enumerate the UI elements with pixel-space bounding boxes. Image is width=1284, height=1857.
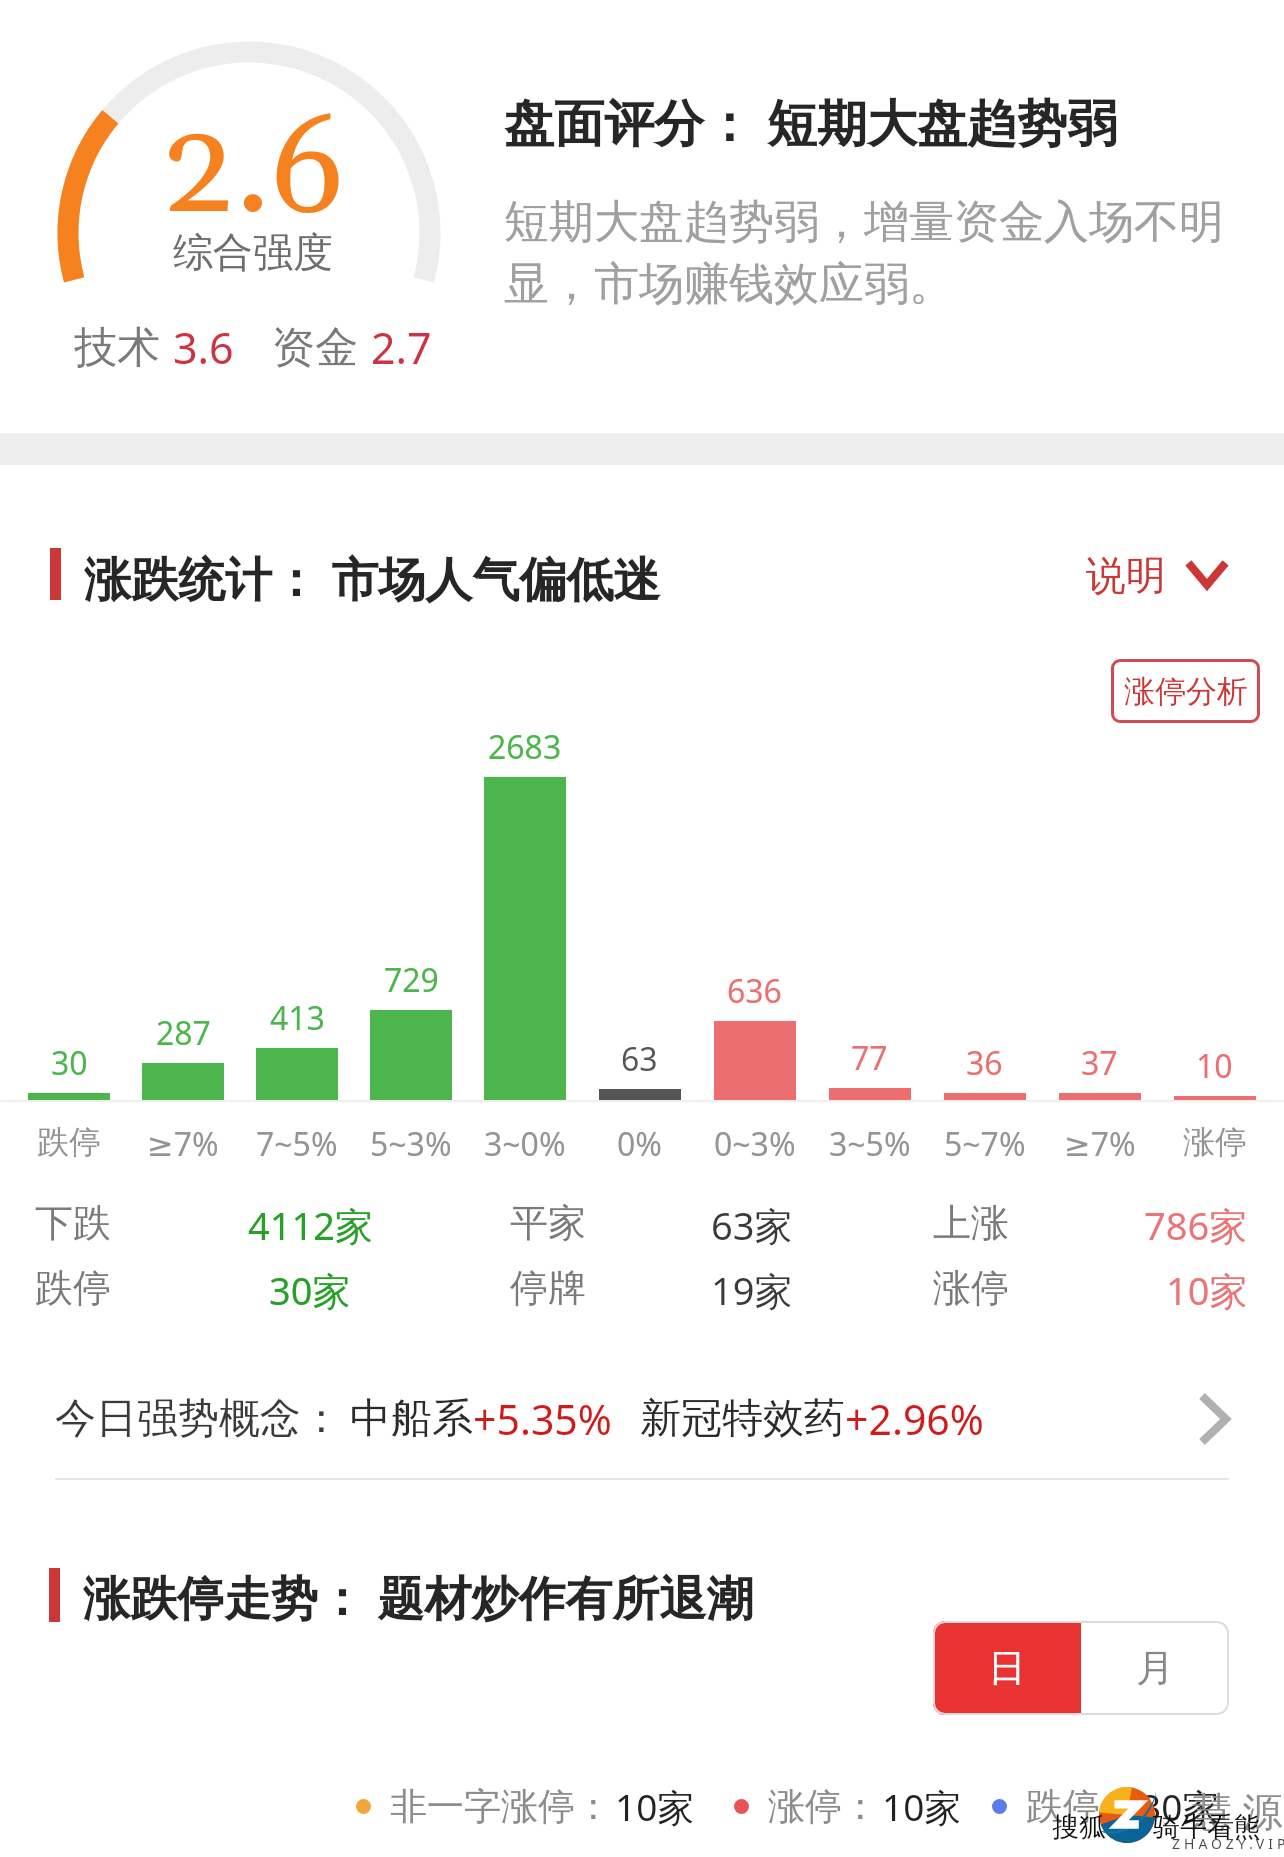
staticText: 涨停分析 xyxy=(1124,672,1248,711)
staticText: 7~5% xyxy=(256,1122,338,1166)
staticText: 4112家 xyxy=(248,1199,373,1247)
staticText: 63家 xyxy=(711,1199,793,1247)
staticText: 0~3% xyxy=(714,1122,796,1166)
staticText: 19家 xyxy=(711,1264,793,1312)
staticText: 涨停 xyxy=(933,1264,1009,1312)
staticText: 729 xyxy=(384,958,439,1002)
staticText: 10家 xyxy=(615,1781,695,1831)
staticText: 慧 源 xyxy=(1192,1783,1283,1838)
staticText: 平家 xyxy=(510,1199,586,1247)
staticText: ZHAOZY.VIP xyxy=(1172,1834,1284,1853)
button[interactable]: 说明 xyxy=(1070,538,1243,612)
staticText: 3~0% xyxy=(484,1122,566,1166)
staticText: 跌停： xyxy=(1026,1783,1137,1830)
staticText: 盘面评分： 短期大盘趋势弱 xyxy=(504,88,1117,156)
staticText: 5~3% xyxy=(370,1122,452,1166)
staticText: 月 xyxy=(1136,1644,1174,1692)
staticText: 786家 xyxy=(1144,1199,1248,1247)
staticText: +2.96% xyxy=(845,1391,984,1447)
staticText: 跌停 xyxy=(37,1122,101,1162)
staticText: +5.35% xyxy=(473,1391,612,1447)
staticText: 技术 xyxy=(74,321,160,375)
staticText: 63 xyxy=(621,1037,658,1081)
other: More concepts xyxy=(1199,1393,1229,1445)
staticText: 涨跌统计： 市场人气偏低迷 xyxy=(84,546,661,610)
staticText: 287 xyxy=(156,1011,211,1055)
staticText: 综合强度 xyxy=(173,227,333,277)
staticText: 下跌 xyxy=(35,1199,111,1247)
button[interactable]: 涨停分析 xyxy=(1111,659,1260,723)
staticText: 5~7% xyxy=(944,1122,1026,1166)
staticText: 说明 xyxy=(1086,550,1166,600)
staticText: 37 xyxy=(1081,1041,1118,1085)
staticText: 日 xyxy=(988,1644,1026,1692)
staticText: 骑牛看熊 xyxy=(1153,1810,1261,1844)
staticText: 2.7 xyxy=(371,318,432,377)
staticText: 30 xyxy=(51,1041,88,1085)
staticText: 非一字涨停： xyxy=(390,1783,612,1830)
staticText: 上涨 xyxy=(933,1199,1009,1247)
staticText: 77 xyxy=(851,1036,888,1080)
staticText: 10 xyxy=(1196,1044,1233,1088)
staticText: 30家 xyxy=(269,1264,351,1312)
staticText: 30家 xyxy=(1140,1781,1220,1831)
staticText: 短期大盘趋势弱，增量资金入场不明显，市场赚钱效应弱。 xyxy=(504,194,1264,313)
staticText: 停牌 xyxy=(510,1264,586,1312)
staticText: 10家 xyxy=(1166,1264,1248,1312)
staticText: 36 xyxy=(966,1041,1003,1085)
staticText: ≥7% xyxy=(147,1122,219,1166)
staticText: 涨停： xyxy=(768,1783,879,1830)
staticText: 636 xyxy=(727,969,782,1013)
staticText: 涨停 xyxy=(1183,1122,1247,1162)
staticText: 413 xyxy=(270,996,325,1040)
button[interactable]: 日 xyxy=(933,1621,1081,1715)
staticText: 跌停 xyxy=(35,1264,111,1312)
staticText: 涨跌停走势： 题材炒作有所退潮 xyxy=(83,1565,754,1629)
button[interactable]: 月 xyxy=(1081,1621,1229,1715)
staticText: 中船系 xyxy=(350,1393,473,1445)
staticText: 2.6 xyxy=(162,89,345,255)
staticText: 今日强势概念： xyxy=(55,1393,342,1445)
staticText: 3.6 xyxy=(173,318,234,377)
staticText: 资金 xyxy=(272,321,358,375)
button[interactable]: 今日强势概念： xyxy=(0,1388,1284,1450)
staticText: 10家 xyxy=(882,1781,962,1831)
staticText: 搜狐 xyxy=(1052,1810,1106,1844)
staticText: 2683 xyxy=(488,725,562,769)
staticText: 3~5% xyxy=(829,1122,911,1166)
staticText: ≥7% xyxy=(1064,1122,1136,1166)
staticText: 新冠特效药 xyxy=(640,1393,845,1445)
staticText: 0% xyxy=(617,1122,662,1166)
